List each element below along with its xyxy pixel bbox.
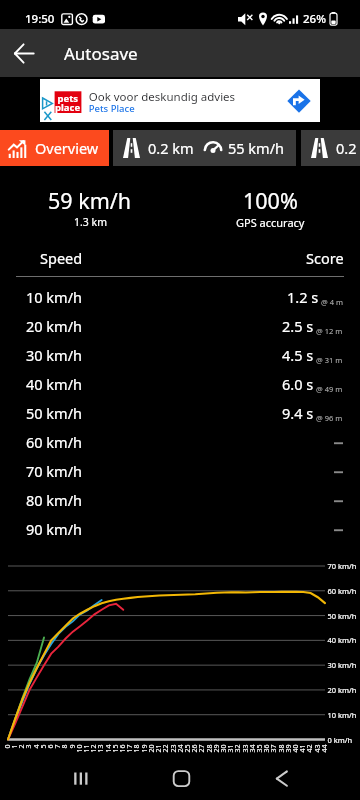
button[interactable]: 40 km/h xyxy=(0,369,360,398)
button[interactable]: 0.2 xyxy=(301,130,360,166)
staticText: 6.0 s xyxy=(282,374,314,394)
staticText: 1.2 s xyxy=(287,287,319,307)
staticText: 0.2 xyxy=(336,138,357,158)
button[interactable]: 90 km/h xyxy=(0,514,360,543)
button[interactable]: Back xyxy=(240,756,360,800)
staticText: 80 km/h xyxy=(26,490,83,510)
button[interactable]: Back xyxy=(0,29,48,77)
staticText: 10 km/h xyxy=(26,287,83,307)
button[interactable]: 60 km/h xyxy=(0,427,360,456)
staticText: @ 4 m xyxy=(321,297,343,307)
staticText: 9.4 s xyxy=(282,403,314,423)
staticText: 2.5 s xyxy=(282,316,314,336)
staticText: 59 km/h xyxy=(48,186,132,215)
button[interactable]: 10 km/h xyxy=(0,282,360,311)
staticText: 100% xyxy=(243,186,298,215)
button[interactable]: Home xyxy=(120,756,240,800)
staticText: Autosave xyxy=(64,42,138,65)
staticText: 90 km/h xyxy=(26,519,83,539)
staticText: Overview xyxy=(35,138,99,158)
staticText: Score xyxy=(306,248,344,268)
button[interactable]: 0.2 km xyxy=(113,130,296,166)
staticText: 30 km/h xyxy=(26,345,83,365)
button[interactable]: 30 km/h xyxy=(0,340,360,369)
staticText: @ 12 m xyxy=(316,326,343,336)
button[interactable]: 50 km/h xyxy=(0,398,360,427)
staticText: @ 49 m xyxy=(316,384,343,394)
staticText: 0.2 km xyxy=(148,138,194,158)
button[interactable] xyxy=(40,79,320,122)
staticText: 70 km/h xyxy=(26,461,83,481)
button[interactable]: Overview xyxy=(0,130,109,166)
staticText: 40 km/h xyxy=(26,374,83,394)
staticText: Speed xyxy=(40,248,83,268)
staticText: GPS accuracy xyxy=(236,215,305,230)
button[interactable]: 80 km/h xyxy=(0,485,360,514)
button[interactable]: 20 km/h xyxy=(0,311,360,340)
button[interactable]: 70 km/h xyxy=(0,456,360,485)
button[interactable]: Recent apps xyxy=(0,756,120,800)
staticText: 1.3 km xyxy=(74,215,107,229)
staticText: 55 km/h xyxy=(228,138,285,158)
staticText: 4.5 s xyxy=(282,345,314,365)
staticText: 50 km/h xyxy=(26,403,83,423)
staticText: @ 96 m xyxy=(316,413,343,423)
staticText: 20 km/h xyxy=(26,316,83,336)
staticText: 60 km/h xyxy=(26,432,83,452)
staticText: @ 31 m xyxy=(316,355,343,365)
